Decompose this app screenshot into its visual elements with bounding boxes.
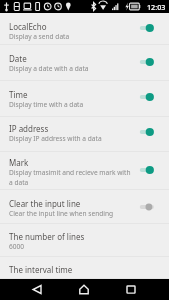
button[interactable]: Mark (0, 152, 169, 190)
staticText: 6000 (9, 242, 25, 251)
button[interactable]: Switch off (138, 197, 162, 217)
button[interactable]: Time (0, 81, 169, 117)
staticText: IP address (9, 123, 49, 134)
button[interactable]: Switch on (138, 18, 162, 38)
staticText: LocalEcho (9, 21, 47, 32)
button[interactable]: Switch on (138, 122, 162, 142)
staticText: Display IP address with a data (9, 134, 102, 143)
staticText: Display tmasimit and recieve mark with a… (9, 168, 131, 186)
button[interactable]: The interval time (0, 257, 169, 279)
staticText: Display a send data (9, 32, 70, 41)
button[interactable]: Clear the input line (0, 190, 169, 224)
button[interactable]: LocalEcho (0, 13, 169, 45)
button[interactable]: IP address (0, 117, 169, 152)
button[interactable]: Home (71, 279, 97, 300)
staticText: The number of lines (9, 231, 85, 242)
staticText: Display time with a data (9, 100, 84, 109)
staticText: Clear the input line (9, 198, 81, 209)
button[interactable]: Back (24, 279, 50, 300)
button[interactable]: Date (0, 45, 169, 81)
staticText: Mark (9, 157, 29, 168)
button[interactable]: Switch on (138, 52, 162, 72)
button[interactable]: Switch on (138, 160, 162, 180)
staticText: 12:03 (147, 2, 166, 12)
staticText: Date (9, 53, 27, 64)
staticText: Clear the input line when sending (9, 209, 114, 218)
button[interactable]: The number of lines (0, 224, 169, 257)
button[interactable]: Switch on (138, 87, 162, 107)
staticText: The interval time (9, 264, 73, 275)
staticText: Display a date with a data (9, 64, 89, 73)
staticText: Time (9, 89, 28, 100)
button[interactable]: Recent apps (118, 279, 144, 300)
